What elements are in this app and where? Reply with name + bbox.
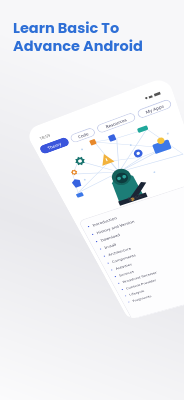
staticText: Introduction xyxy=(92,215,118,228)
staticText: Lifecycle xyxy=(128,289,145,297)
staticText: Architecture xyxy=(107,246,132,257)
staticText: Services xyxy=(118,269,135,278)
staticText: Fragments xyxy=(132,294,153,303)
button[interactable]: Lifecycle xyxy=(123,263,184,299)
staticText: History and Version xyxy=(96,219,135,235)
button[interactable]: Install xyxy=(98,211,184,253)
button[interactable]: Theory xyxy=(39,136,70,155)
staticText: 18:59 xyxy=(38,132,51,141)
button[interactable]: Download xyxy=(94,203,184,246)
staticText: Broadcast Receiver xyxy=(122,270,158,284)
staticText: Download xyxy=(100,233,121,243)
button[interactable]: Services xyxy=(113,242,184,280)
staticText: Components xyxy=(111,253,137,264)
button[interactable]: Code xyxy=(69,127,97,144)
staticText: Activities xyxy=(115,262,133,271)
button[interactable]: Activities xyxy=(109,234,184,274)
button[interactable]: Content Provider xyxy=(120,256,184,293)
staticText: Resources xyxy=(105,117,127,129)
button[interactable]: Resources xyxy=(95,112,137,134)
staticText: Code xyxy=(77,131,89,139)
button[interactable]: Fragments xyxy=(126,270,184,305)
button[interactable]: My Apps xyxy=(136,98,172,119)
staticText: Content Provider xyxy=(125,278,157,291)
button[interactable]: Broadcast Receiver xyxy=(116,249,184,287)
button[interactable]: Components xyxy=(105,226,184,267)
button[interactable]: Architecture xyxy=(102,219,184,260)
button[interactable]: History and Version xyxy=(90,194,184,238)
staticText: Basic xyxy=(127,191,144,202)
staticText: Theory xyxy=(46,141,62,150)
staticText: My Apps xyxy=(145,103,165,115)
staticText: Learn Basic To Advance Android xyxy=(13,18,143,56)
staticText: Install xyxy=(104,242,118,250)
button[interactable]: Introduction xyxy=(86,186,184,231)
